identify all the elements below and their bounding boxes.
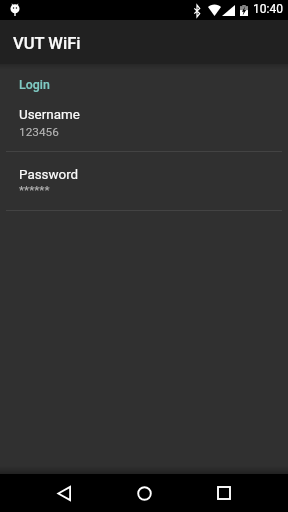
- staticText: Password: [19, 167, 79, 183]
- staticText: Login: [19, 77, 50, 92]
- button[interactable]: Password: [0, 152, 288, 210]
- staticText: Username: [19, 107, 80, 123]
- button[interactable]: Home: [104, 474, 184, 512]
- staticText: VUT WiFi: [13, 34, 81, 53]
- staticText: 10:40: [253, 2, 283, 16]
- button[interactable]: Recent apps: [184, 474, 264, 512]
- button[interactable]: Username: [0, 99, 288, 151]
- button[interactable]: Back: [24, 474, 104, 512]
- staticText: 123456: [19, 125, 59, 139]
- staticText: ******: [19, 183, 50, 197]
